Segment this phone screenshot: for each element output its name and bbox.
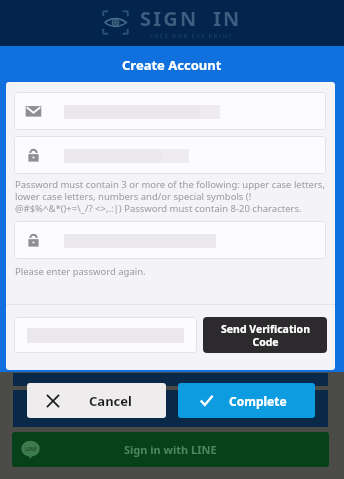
staticText: Send Verification Code — [221, 322, 310, 349]
button[interactable] — [14, 136, 326, 174]
staticText: Cancel — [89, 392, 132, 410]
button[interactable]: Cancel — [27, 383, 166, 418]
button[interactable]: Complete — [178, 383, 315, 418]
staticText: Complete — [229, 393, 287, 409]
button[interactable] — [14, 317, 197, 353]
button[interactable] — [14, 92, 326, 130]
staticText: Please enter password again. — [15, 265, 146, 278]
staticText: Create Account — [122, 56, 222, 72]
button[interactable]: Sign in with LINE — [12, 432, 329, 467]
staticText: FACE AND EYE PRINT — [150, 32, 233, 40]
staticText: Password must contain 3 or more of the f… — [15, 178, 331, 215]
button[interactable]: Send Verification Code — [203, 317, 327, 353]
staticText: SIGN IN — [140, 5, 242, 32]
staticText: LINE — [25, 446, 37, 453]
button[interactable] — [14, 221, 326, 259]
staticText: Sign in with LINE — [124, 442, 217, 457]
